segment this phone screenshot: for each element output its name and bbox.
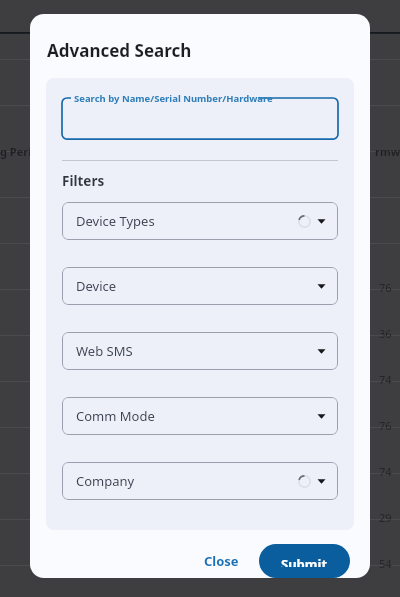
button[interactable]: Device Types bbox=[62, 202, 338, 240]
other: Open Device Types options bbox=[316, 216, 327, 227]
staticText: Search by Name/Serial Number/Hardware bbox=[74, 92, 273, 105]
staticText: 36 bbox=[379, 326, 392, 341]
staticText: Web SMS bbox=[76, 342, 316, 360]
other: Open Comm Mode options bbox=[316, 411, 327, 422]
staticText: Device Types bbox=[76, 212, 298, 230]
staticText: 54 bbox=[379, 556, 392, 571]
staticText: rmw bbox=[375, 144, 400, 159]
button[interactable]: Close bbox=[194, 544, 249, 578]
other: Open Company options bbox=[316, 476, 327, 487]
button[interactable]: Comm Mode bbox=[62, 397, 338, 435]
staticText: Company bbox=[76, 472, 298, 490]
staticText: 74 bbox=[379, 464, 392, 479]
button[interactable]: Device bbox=[62, 267, 338, 305]
staticText: 76 bbox=[379, 280, 392, 295]
other: Open Device options bbox=[316, 281, 327, 292]
staticText: 74 bbox=[379, 372, 392, 387]
staticText: Advanced Search bbox=[47, 39, 192, 62]
staticText: Submit bbox=[281, 555, 328, 567]
button[interactable]: Web SMS bbox=[62, 332, 338, 370]
staticText: g Peri bbox=[0, 144, 32, 159]
button[interactable]: Search by Name/Serial Number/Hardware bbox=[62, 92, 338, 140]
staticText: Filters bbox=[62, 172, 105, 190]
other: Open Web SMS options bbox=[316, 346, 327, 357]
staticText: Device bbox=[76, 277, 316, 295]
staticText: Comm Mode bbox=[76, 407, 316, 425]
staticText: 29 bbox=[379, 510, 392, 525]
staticText: Close bbox=[204, 552, 239, 570]
button[interactable]: Company bbox=[62, 462, 338, 500]
staticText: 76 bbox=[379, 418, 392, 433]
button[interactable]: Submit bbox=[259, 544, 350, 578]
